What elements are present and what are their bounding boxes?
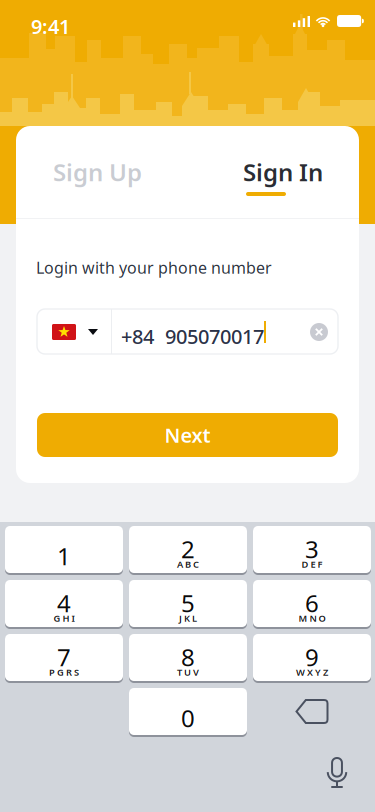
- staticText: 7: [57, 641, 71, 673]
- staticText: Login with your phone number: [36, 257, 272, 278]
- button[interactable]: 0: [129, 688, 247, 736]
- button[interactable]: 9: [253, 634, 371, 682]
- button[interactable]: 2: [129, 526, 247, 574]
- staticText: J K L: [179, 612, 197, 624]
- staticText: 1: [57, 540, 71, 572]
- staticText: 2: [181, 533, 195, 565]
- button[interactable]: Select country code: [37, 309, 111, 354]
- staticText: A B C: [177, 558, 199, 570]
- staticText: W X Y Z: [296, 666, 328, 678]
- button[interactable]: 3: [253, 526, 371, 574]
- button[interactable]: 5: [129, 580, 247, 628]
- button[interactable]: 7: [5, 634, 123, 682]
- staticText: 6: [305, 587, 319, 619]
- staticText: 5: [181, 587, 195, 619]
- staticText: 3: [305, 533, 319, 565]
- staticText: 905070017: [165, 323, 264, 350]
- button[interactable]: Sign Up: [16, 126, 187, 218]
- staticText: 8: [181, 641, 195, 673]
- button[interactable]: 8: [129, 634, 247, 682]
- button[interactable]: 4: [5, 580, 123, 628]
- button[interactable]: 1: [5, 526, 123, 574]
- button[interactable]: Next: [37, 413, 338, 457]
- staticText: 0: [181, 702, 195, 734]
- staticText: 4: [57, 587, 71, 619]
- staticText: Sign In: [243, 156, 323, 188]
- staticText: G H I: [53, 612, 74, 624]
- staticText: P G R S: [49, 666, 79, 678]
- button[interactable]: Sign In: [187, 126, 359, 218]
- staticText: Sign Up: [53, 156, 142, 188]
- button[interactable]: Clear: [310, 323, 328, 341]
- button[interactable]: Dictation: [315, 751, 359, 795]
- staticText: M N O: [298, 612, 325, 624]
- staticText: 9: [305, 641, 319, 673]
- staticText: D E F: [301, 558, 322, 570]
- staticText: Next: [164, 422, 210, 448]
- staticText: +84: [121, 323, 154, 350]
- staticText: T U V: [177, 666, 199, 678]
- button[interactable]: Delete: [253, 688, 371, 735]
- button[interactable]: 6: [253, 580, 371, 628]
- staticText: 9:41: [31, 13, 70, 40]
